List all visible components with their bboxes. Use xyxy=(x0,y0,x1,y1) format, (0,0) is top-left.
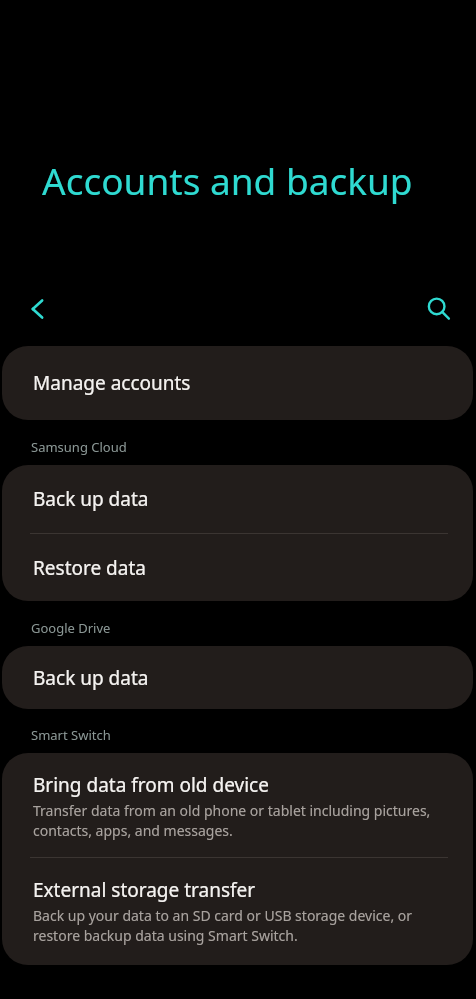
button[interactable]: Back up data xyxy=(2,465,473,533)
button[interactable]: External storage transfer xyxy=(2,858,473,965)
button[interactable]: Bring data from old device xyxy=(2,753,473,857)
staticText: Back up data xyxy=(33,486,149,512)
staticText: External storage transfer xyxy=(33,877,256,903)
staticText: Google Drive xyxy=(31,619,111,637)
staticText: Transfer data from an old phone or table… xyxy=(33,801,447,840)
staticText: Restore data xyxy=(33,555,146,581)
staticText: Smart Switch xyxy=(31,726,111,744)
staticText: Samsung Cloud xyxy=(31,438,127,456)
staticText: Manage accounts xyxy=(33,370,191,396)
staticText: Bring data from old device xyxy=(33,772,269,798)
staticText: Back up data xyxy=(33,665,149,691)
button[interactable]: Back xyxy=(10,281,66,337)
button[interactable]: Manage accounts xyxy=(2,346,473,420)
button[interactable]: Restore data xyxy=(2,534,473,601)
button[interactable]: Search xyxy=(411,281,467,337)
staticText: Accounts and backup xyxy=(42,155,413,205)
button[interactable]: Back up data xyxy=(2,646,473,709)
staticText: Back up your data to an SD card or USB s… xyxy=(33,906,447,945)
